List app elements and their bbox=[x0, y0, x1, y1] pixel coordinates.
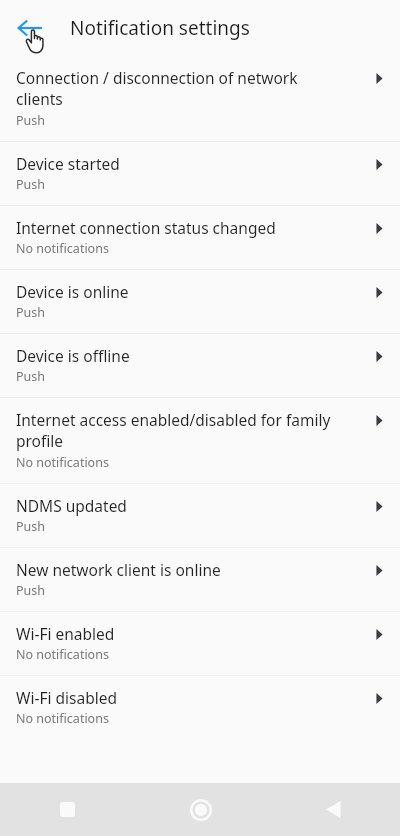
button[interactable]: Connection / disconnection of network cl… bbox=[0, 56, 400, 141]
staticText: Internet connection status changed bbox=[16, 217, 346, 238]
button[interactable]: NDMS updated bbox=[0, 484, 400, 547]
staticText: Push bbox=[16, 112, 46, 129]
button[interactable]: Wi-Fi disabled bbox=[0, 676, 400, 739]
staticText: No notifications bbox=[16, 646, 109, 663]
button[interactable]: Home bbox=[134, 783, 267, 836]
button[interactable]: Device is offline bbox=[0, 334, 400, 397]
staticText: Connection / disconnection of network cl… bbox=[16, 67, 346, 110]
staticText: Device started bbox=[16, 153, 346, 174]
button[interactable]: Device is online bbox=[0, 270, 400, 333]
button[interactable]: Back bbox=[267, 783, 400, 836]
staticText: Device is online bbox=[16, 281, 346, 302]
staticText: Push bbox=[16, 518, 46, 535]
button[interactable]: New network client is online bbox=[0, 548, 400, 611]
staticText: NDMS updated bbox=[16, 495, 346, 516]
staticText: No notifications bbox=[16, 240, 109, 257]
button[interactable]: Wi-Fi enabled bbox=[0, 612, 400, 675]
staticText: Push bbox=[16, 582, 46, 599]
staticText: Wi-Fi enabled bbox=[16, 623, 346, 644]
button[interactable]: Internet access enabled/disabled for fam… bbox=[0, 398, 400, 483]
staticText: Internet access enabled/disabled for fam… bbox=[16, 409, 346, 452]
button[interactable]: Back bbox=[6, 4, 54, 52]
staticText: Wi-Fi disabled bbox=[16, 687, 346, 708]
button[interactable]: Recent apps bbox=[0, 783, 134, 836]
staticText: No notifications bbox=[16, 710, 109, 727]
staticText: Push bbox=[16, 368, 46, 385]
button[interactable]: Device started bbox=[0, 142, 400, 205]
staticText: New network client is online bbox=[16, 559, 346, 580]
staticText: Push bbox=[16, 176, 46, 193]
staticText: Device is offline bbox=[16, 345, 346, 366]
staticText: No notifications bbox=[16, 454, 109, 471]
button[interactable]: Internet connection status changed bbox=[0, 206, 400, 269]
staticText: Notification settings bbox=[70, 15, 250, 41]
staticText: Push bbox=[16, 304, 46, 321]
